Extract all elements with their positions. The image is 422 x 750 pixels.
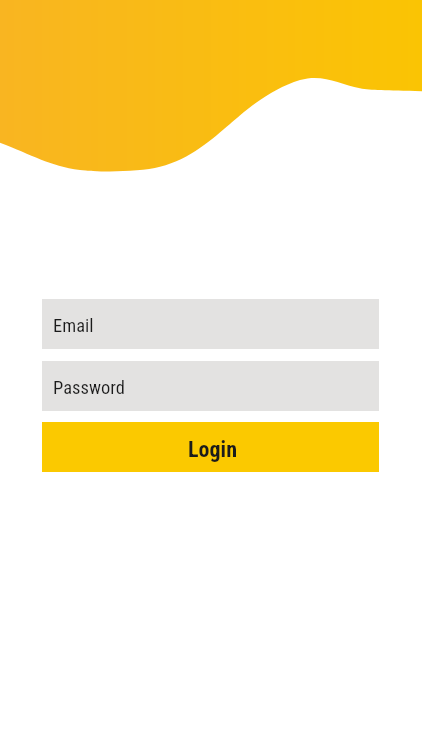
staticText: Email [53,315,94,337]
staticText: Password [53,377,125,399]
button[interactable]: Login [42,422,379,472]
button[interactable]: Password [42,361,379,411]
button[interactable]: Email [42,299,379,349]
staticText: Login [188,437,237,463]
